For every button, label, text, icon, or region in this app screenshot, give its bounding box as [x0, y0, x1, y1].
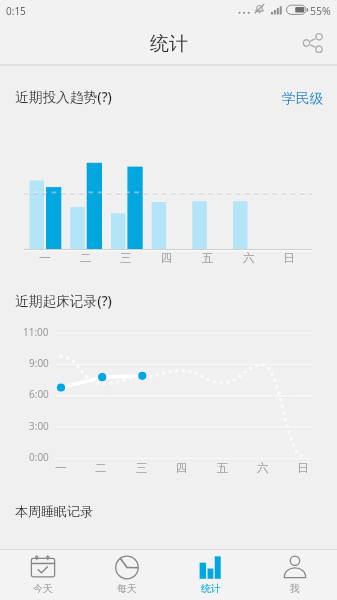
staticText: 每天 — [117, 582, 137, 595]
button[interactable]: 每天 — [85, 550, 169, 600]
staticText: 四 — [176, 461, 188, 475]
staticText: 0:15 — [6, 4, 26, 18]
staticText: 三 — [136, 461, 148, 475]
staticText: 统计 — [150, 32, 188, 56]
staticText: 近期投入趋势(?) — [15, 87, 112, 106]
button[interactable]: 我 — [253, 550, 337, 600]
staticText: 五 — [202, 251, 214, 265]
staticText: 六 — [257, 461, 269, 475]
staticText: 6:00 — [29, 387, 49, 401]
staticText: 55% — [310, 4, 331, 18]
button[interactable]: 今天 — [0, 550, 85, 600]
button[interactable]: Share — [296, 27, 328, 59]
staticText: 9:00 — [29, 356, 49, 370]
staticText: 本周睡眠记录 — [15, 503, 93, 519]
staticText: 日 — [283, 251, 295, 265]
button[interactable]: 学民级 — [277, 85, 329, 111]
staticText: 日 — [297, 461, 309, 475]
staticText: 二 — [95, 461, 107, 475]
staticText: 学民级 — [282, 90, 324, 107]
staticText: 统计 — [201, 582, 221, 595]
staticText: 三 — [120, 251, 132, 265]
staticText: 一 — [55, 461, 67, 475]
staticText: 0:00 — [29, 450, 49, 464]
staticText: 我 — [290, 582, 300, 595]
staticText: 11:00 — [23, 325, 49, 339]
staticText: 五 — [217, 461, 229, 475]
staticText: 四 — [161, 251, 173, 265]
staticText: 六 — [243, 251, 255, 265]
staticText: 二 — [80, 251, 92, 265]
staticText: 今天 — [33, 582, 53, 595]
staticText: 一 — [39, 251, 51, 265]
staticText: 近期起床记录(?) — [15, 291, 112, 310]
button[interactable]: 统计 — [169, 550, 253, 600]
staticText: 3:00 — [29, 419, 49, 433]
